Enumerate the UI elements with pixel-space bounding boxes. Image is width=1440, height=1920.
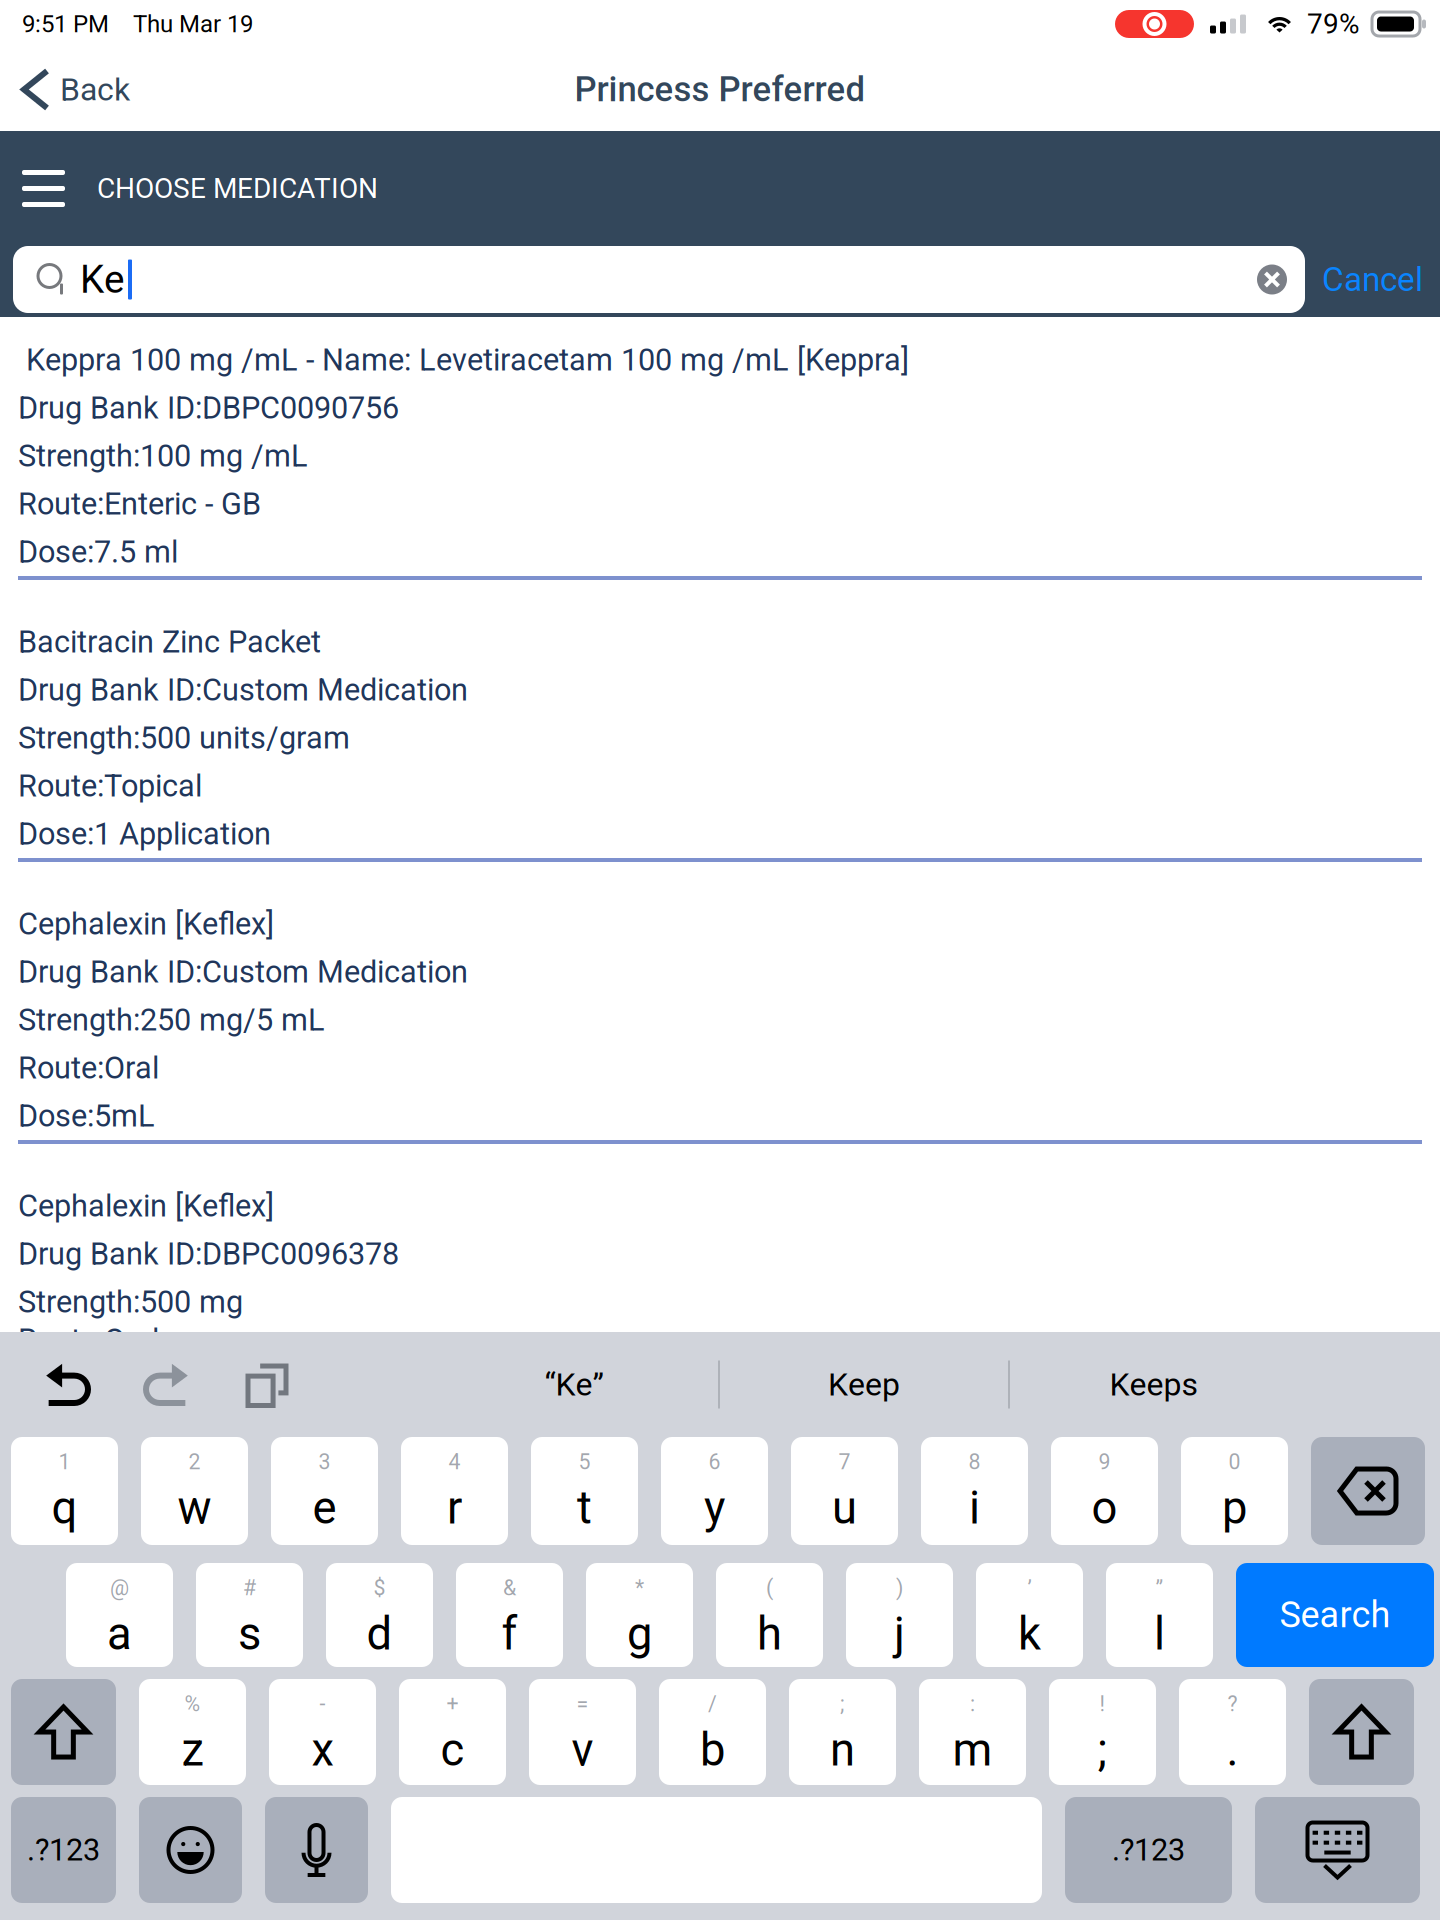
- button[interactable]: 6: [661, 1437, 768, 1545]
- button[interactable]: Emoji: [139, 1797, 242, 1903]
- button[interactable]: .?123: [1065, 1797, 1232, 1903]
- button[interactable]: @: [66, 1563, 173, 1667]
- staticText: ): [896, 1575, 903, 1600]
- button[interactable]: Search: [1236, 1563, 1434, 1667]
- button[interactable]: 9: [1051, 1437, 1158, 1545]
- staticText: CHOOSE MEDICATION: [97, 172, 378, 205]
- staticText: 0: [1228, 1449, 1240, 1474]
- staticText: a: [107, 1607, 132, 1660]
- button[interactable]: 4: [401, 1437, 508, 1545]
- button[interactable]: Menu: [0, 158, 75, 219]
- button[interactable]: ;: [789, 1679, 896, 1785]
- staticText: Strength:250 mg/5 mL: [18, 1002, 325, 1038]
- button[interactable]: “Ke”: [430, 1353, 718, 1415]
- staticText: /: [708, 1691, 717, 1716]
- button[interactable]: .?123: [11, 1797, 116, 1903]
- button[interactable]: !: [1049, 1679, 1156, 1785]
- button[interactable]: Undo: [0, 1354, 146, 1415]
- button[interactable]: Shift: [1309, 1679, 1414, 1785]
- button[interactable]: 8: [921, 1437, 1028, 1545]
- button[interactable]: Dictate: [265, 1797, 368, 1903]
- button[interactable]: ’: [976, 1563, 1083, 1667]
- staticText: Keppra 100 mg /mL - Name: Levetiracetam …: [18, 342, 909, 378]
- staticText: Dose:1 Application: [18, 816, 271, 852]
- button[interactable]: $: [326, 1563, 433, 1667]
- staticText: 79%: [1307, 8, 1360, 40]
- button[interactable]: 7: [791, 1437, 898, 1545]
- staticText: c: [440, 1723, 464, 1776]
- staticText: 9:51 PM: [22, 10, 109, 38]
- button[interactable]: Keeps: [1010, 1353, 1298, 1415]
- staticText: :: [970, 1691, 975, 1716]
- staticText: 1: [58, 1449, 70, 1474]
- staticText: Ke: [80, 257, 125, 302]
- staticText: “Ke”: [544, 1366, 603, 1403]
- staticText: h: [757, 1607, 782, 1660]
- button[interactable]: Redo: [146, 1354, 242, 1415]
- staticText: Back: [60, 71, 130, 108]
- staticText: ”: [1155, 1575, 1163, 1600]
- button[interactable]: -: [269, 1679, 376, 1785]
- staticText: *: [635, 1575, 644, 1600]
- button[interactable]: #: [196, 1563, 303, 1667]
- button[interactable]: (: [716, 1563, 823, 1667]
- button[interactable]: 0: [1181, 1437, 1288, 1545]
- staticText: Keep: [828, 1366, 900, 1403]
- button[interactable]: Back: [0, 61, 130, 118]
- staticText: Route:Oral: [18, 1322, 159, 1358]
- staticText: ?: [1227, 1691, 1237, 1716]
- staticText: f: [501, 1607, 517, 1660]
- staticText: 3: [318, 1449, 330, 1474]
- staticText: Dose:7.5 ml: [18, 534, 178, 570]
- staticText: u: [832, 1481, 857, 1534]
- button[interactable]: ”: [1106, 1563, 1213, 1667]
- staticText: Strength:500 mg: [18, 1284, 243, 1320]
- staticText: 5: [578, 1449, 590, 1474]
- button[interactable]: Keep: [720, 1353, 1008, 1415]
- staticText: j: [894, 1607, 905, 1660]
- staticText: @: [110, 1575, 129, 1600]
- staticText: d: [366, 1607, 392, 1660]
- staticText: ’: [1027, 1575, 1031, 1600]
- button[interactable]: ?: [1179, 1679, 1286, 1785]
- button[interactable]: Delete: [1311, 1437, 1425, 1545]
- button[interactable]: Cancel: [1305, 248, 1440, 311]
- staticText: 2: [188, 1449, 200, 1474]
- staticText: r: [447, 1481, 462, 1534]
- button[interactable]: Dismiss keyboard: [1255, 1797, 1420, 1903]
- staticText: ;: [840, 1691, 845, 1716]
- button[interactable]: %: [139, 1679, 246, 1785]
- staticText: Princess Preferred: [574, 69, 865, 110]
- button[interactable]: ): [846, 1563, 953, 1667]
- button[interactable]: =: [529, 1679, 636, 1785]
- staticText: #: [243, 1575, 256, 1600]
- staticText: w: [177, 1481, 211, 1534]
- button[interactable]: :: [919, 1679, 1026, 1785]
- button[interactable]: 3: [271, 1437, 378, 1545]
- button[interactable]: *: [586, 1563, 693, 1667]
- button[interactable]: 5: [531, 1437, 638, 1545]
- staticText: .: [1226, 1723, 1238, 1776]
- staticText: Dose:5mL: [18, 1098, 155, 1134]
- staticText: l: [1154, 1607, 1165, 1660]
- button[interactable]: /: [659, 1679, 766, 1785]
- staticText: .?123: [27, 1832, 100, 1868]
- staticText: =: [576, 1691, 588, 1716]
- staticText: 4: [448, 1449, 460, 1474]
- staticText: Route:Enteric - GB: [18, 486, 261, 522]
- staticText: t: [577, 1481, 592, 1534]
- button[interactable]: &: [456, 1563, 563, 1667]
- button[interactable]: Paste: [242, 1351, 292, 1417]
- staticText: Drug Bank ID:Custom Medication: [18, 954, 468, 990]
- button[interactable]: 2: [141, 1437, 248, 1545]
- staticText: Keeps: [1109, 1366, 1198, 1403]
- staticText: Route:Oral: [18, 1050, 159, 1086]
- staticText: o: [1091, 1481, 1117, 1534]
- staticText: .?123: [1112, 1832, 1185, 1868]
- button[interactable]: Clear text: [1249, 256, 1295, 302]
- button[interactable]: 1: [11, 1437, 118, 1545]
- staticText: m: [952, 1723, 992, 1776]
- button[interactable]: +: [399, 1679, 506, 1785]
- button[interactable]: Shift: [11, 1679, 116, 1785]
